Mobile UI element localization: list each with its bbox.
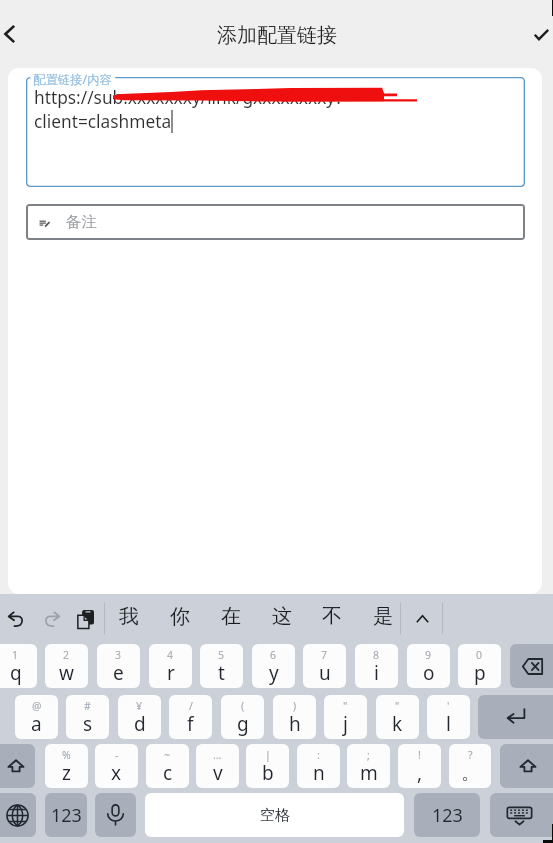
staticText: 9 bbox=[425, 648, 432, 662]
staticText: " bbox=[343, 699, 348, 713]
button[interactable]: ? bbox=[449, 744, 491, 788]
staticText: x bbox=[111, 760, 122, 786]
staticText: 这 bbox=[272, 604, 292, 629]
button[interactable]: … bbox=[196, 744, 239, 788]
button[interactable]: 不 bbox=[307, 594, 357, 643]
button[interactable]: ! bbox=[398, 744, 441, 788]
button[interactable]: % bbox=[45, 744, 88, 788]
staticText: p bbox=[474, 660, 486, 686]
button[interactable]: 2 bbox=[45, 644, 88, 688]
staticText: " bbox=[395, 699, 400, 713]
staticText: 3 bbox=[115, 648, 122, 662]
button[interactable]: 1 bbox=[0, 644, 37, 688]
staticText: w bbox=[59, 660, 74, 686]
staticText: https://sub.xxxxxxxy/link/gxxxxxxxxy? bbox=[34, 86, 343, 110]
staticText: s bbox=[83, 711, 93, 737]
button[interactable]: 3 bbox=[97, 644, 140, 688]
staticText: ; bbox=[367, 748, 370, 762]
button[interactable]: @ bbox=[15, 695, 58, 739]
staticText: 你 bbox=[170, 604, 190, 629]
staticText: 5 bbox=[218, 648, 225, 662]
staticText: u bbox=[319, 660, 331, 686]
button[interactable]: ) bbox=[273, 695, 316, 739]
staticText: c bbox=[163, 760, 173, 786]
button[interactable]: 这 bbox=[257, 594, 307, 643]
staticText: i bbox=[374, 660, 379, 686]
staticText: d bbox=[134, 711, 146, 737]
staticText: t bbox=[218, 660, 225, 686]
button[interactable]: 0 bbox=[458, 644, 501, 688]
button[interactable]: | bbox=[246, 744, 289, 788]
button[interactable]: Voice input bbox=[95, 793, 136, 837]
staticText: , bbox=[417, 760, 423, 786]
button[interactable]: 7 bbox=[303, 644, 346, 688]
staticText: h bbox=[289, 711, 301, 737]
button[interactable]: Space bbox=[145, 793, 404, 837]
staticText: | bbox=[265, 748, 271, 762]
staticText: y bbox=[269, 660, 279, 686]
staticText: z bbox=[62, 760, 71, 786]
button[interactable]: Language bbox=[0, 793, 36, 837]
staticText: a bbox=[31, 711, 42, 737]
staticText: m bbox=[360, 760, 378, 786]
staticText: ~ bbox=[164, 748, 171, 762]
button[interactable]: 9 bbox=[407, 644, 450, 688]
staticText: 8 bbox=[373, 648, 380, 662]
staticText: n bbox=[313, 760, 325, 786]
staticText: ! bbox=[418, 748, 421, 762]
button[interactable]: ; bbox=[347, 744, 390, 788]
staticText: % bbox=[62, 748, 71, 762]
button[interactable]: Enter bbox=[478, 695, 553, 739]
button[interactable]: 4 bbox=[149, 644, 192, 688]
staticText: 不 bbox=[322, 604, 342, 629]
staticText: client=clashmeta bbox=[34, 110, 172, 134]
button[interactable]: Confirm bbox=[517, 10, 553, 58]
button[interactable]: ( bbox=[221, 695, 264, 739]
button[interactable]: Clipboard bbox=[68, 595, 102, 643]
staticText: 空格 bbox=[260, 806, 290, 825]
button[interactable]: / bbox=[169, 695, 212, 739]
button[interactable]: ¥ bbox=[118, 695, 161, 739]
button[interactable]: 我 bbox=[104, 594, 154, 643]
button[interactable]: 6 bbox=[252, 644, 295, 688]
staticText: 4 bbox=[167, 648, 174, 662]
staticText: k bbox=[392, 711, 403, 737]
button[interactable]: # bbox=[66, 695, 109, 739]
staticText: 是 bbox=[373, 604, 393, 629]
button[interactable]: Shift bbox=[500, 744, 553, 788]
staticText: 在 bbox=[221, 604, 241, 629]
staticText: 2 bbox=[63, 648, 70, 662]
staticText: r bbox=[167, 660, 175, 686]
button[interactable]: " bbox=[324, 695, 367, 739]
button[interactable]: ' bbox=[427, 695, 470, 739]
staticText: v bbox=[213, 760, 223, 786]
button[interactable]: Expand suggestions bbox=[401, 594, 443, 643]
button[interactable]: 5 bbox=[200, 644, 243, 688]
button[interactable]: " bbox=[376, 695, 419, 739]
button[interactable]: Back bbox=[0, 10, 32, 58]
button[interactable]: Backspace bbox=[510, 644, 553, 688]
staticText: … bbox=[213, 748, 222, 762]
button[interactable]: 在 bbox=[206, 594, 256, 643]
staticText: # bbox=[84, 699, 91, 713]
button[interactable]: Numbers bbox=[45, 793, 87, 837]
button[interactable]: Redo bbox=[35, 595, 68, 643]
staticText: 备注 bbox=[66, 212, 97, 232]
button[interactable]: 备注 bbox=[26, 204, 525, 240]
staticText: j bbox=[343, 711, 348, 737]
button[interactable]: 是 bbox=[358, 594, 408, 643]
staticText: ¥ bbox=[136, 699, 143, 713]
button[interactable]: - bbox=[95, 744, 138, 788]
button[interactable]: : bbox=[297, 744, 340, 788]
button[interactable]: ~ bbox=[146, 744, 189, 788]
staticText: - bbox=[115, 748, 119, 762]
staticText: q bbox=[10, 660, 22, 686]
button[interactable]: 你 bbox=[155, 594, 205, 643]
button[interactable]: Hide keyboard bbox=[490, 793, 553, 837]
staticText: 。 bbox=[461, 761, 480, 785]
staticText: : bbox=[317, 748, 320, 762]
button[interactable]: 8 bbox=[355, 644, 398, 688]
button[interactable]: Shift bbox=[0, 744, 35, 788]
button[interactable]: Numbers bbox=[414, 793, 480, 837]
button[interactable]: Undo bbox=[0, 595, 32, 643]
